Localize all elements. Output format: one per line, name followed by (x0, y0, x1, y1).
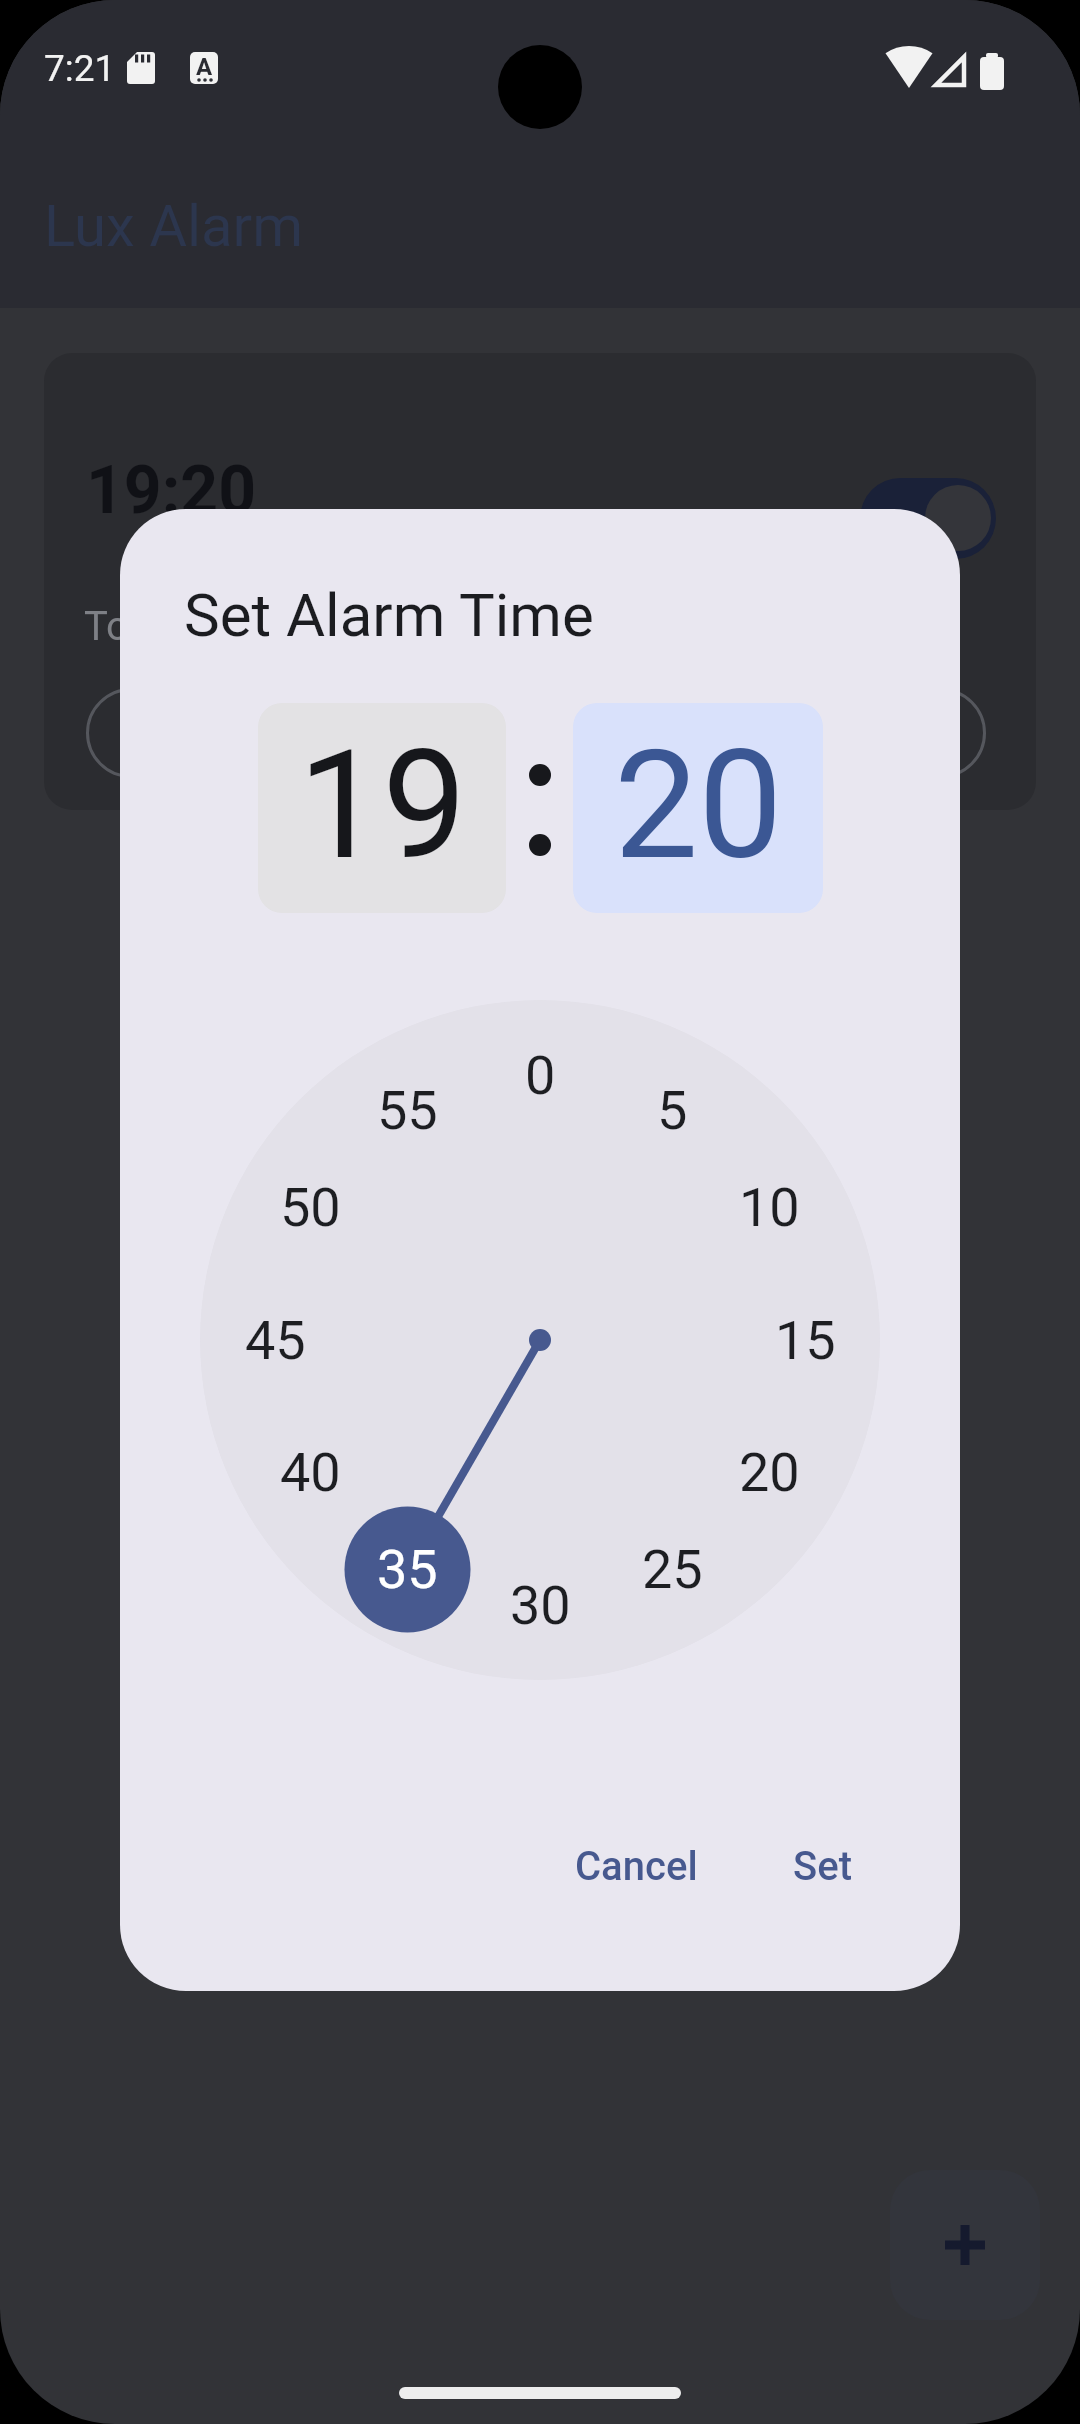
staticText: 50 (280, 1176, 341, 1239)
staticText: 19:20 (86, 452, 257, 524)
staticText: 5 (657, 1079, 688, 1142)
staticText: Lux Alarm (44, 192, 304, 260)
staticText: Set Alarm Time (184, 580, 594, 650)
staticText: Cancel (575, 1843, 698, 1890)
staticText: 7:21 (44, 47, 116, 90)
staticText: 20 (614, 718, 783, 894)
staticText: 55 (377, 1079, 438, 1142)
staticText: 19 (298, 718, 467, 894)
staticText: 40 (280, 1441, 341, 1504)
staticText: 30 (510, 1574, 571, 1637)
staticText: 15 (775, 1309, 836, 1372)
staticText: A (196, 53, 213, 81)
staticText: 20 (739, 1441, 800, 1504)
staticText: Today (84, 603, 192, 650)
staticText: 45 (245, 1309, 306, 1372)
staticText: 35 (377, 1538, 438, 1601)
staticText: 25 (642, 1538, 703, 1601)
staticText: 0 (525, 1044, 556, 1107)
staticText: Set (793, 1843, 852, 1890)
staticText: 10 (739, 1176, 800, 1239)
